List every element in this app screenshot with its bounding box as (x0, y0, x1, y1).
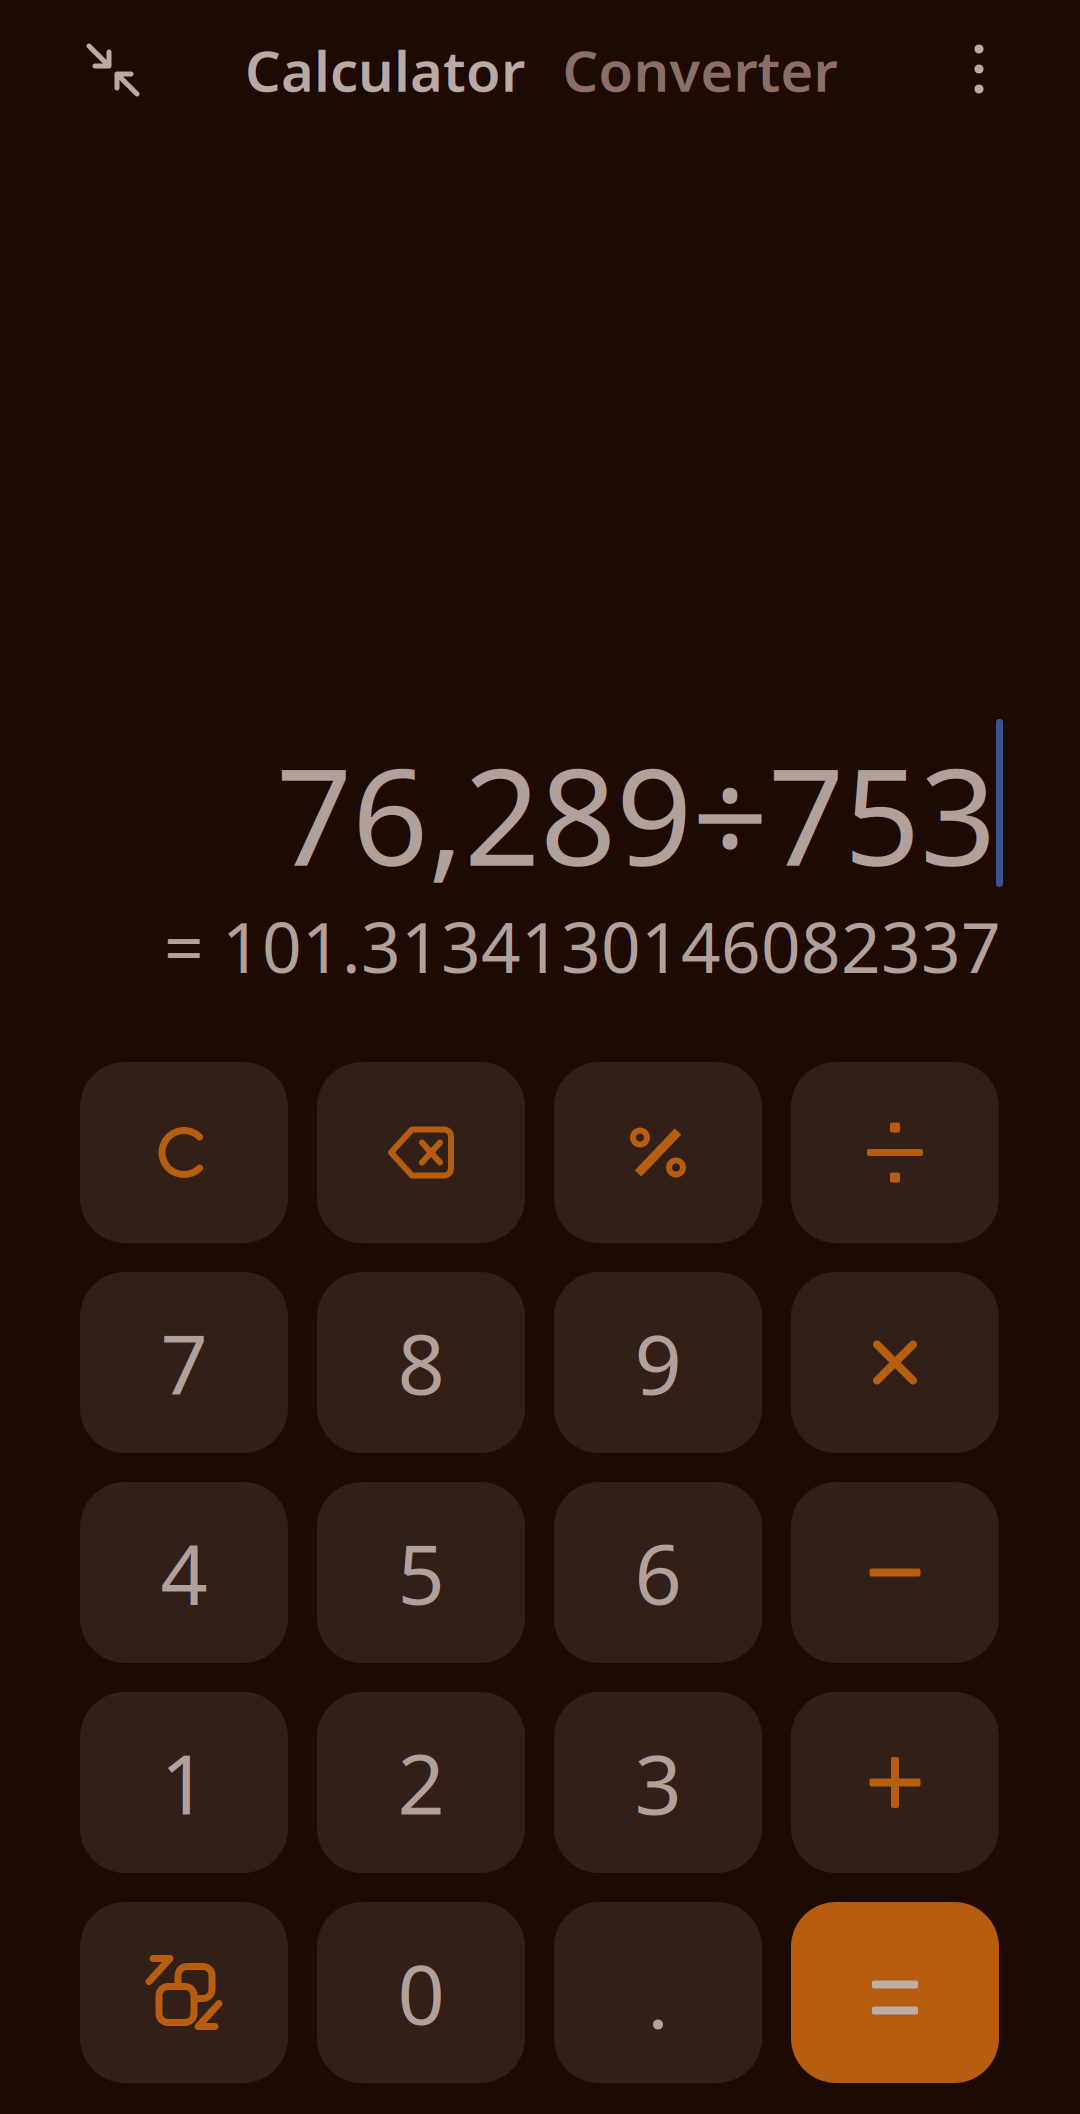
staticText: 4 (160, 1518, 207, 1627)
button[interactable]: 0 (317, 1902, 525, 2083)
button[interactable]: Subtract (791, 1482, 999, 1663)
button[interactable]: 6 (554, 1482, 762, 1663)
button[interactable]: Clear (80, 1062, 288, 1243)
staticText: Converter (562, 33, 837, 107)
staticText: Calculator (245, 33, 525, 107)
button[interactable]: 5 (317, 1482, 525, 1663)
staticText: = 101.3134130146082337 (164, 900, 1001, 992)
staticText: 76,289÷753 (276, 725, 996, 903)
button[interactable]: Divide (791, 1062, 999, 1243)
button[interactable]: Equals (791, 1902, 999, 2083)
button[interactable]: Multiply (791, 1272, 999, 1453)
button[interactable]: Calculator (235, 19, 535, 121)
staticText: 0 (397, 1938, 444, 2047)
button[interactable]: 8 (317, 1272, 525, 1453)
button[interactable]: Decimal point (554, 1902, 762, 2083)
staticText: 5 (397, 1518, 444, 1627)
button[interactable]: 9 (554, 1272, 762, 1453)
staticText: 2 (397, 1728, 444, 1837)
button[interactable]: Backspace (317, 1062, 525, 1243)
button[interactable]: 1 (80, 1692, 288, 1873)
staticText: 1 (160, 1728, 207, 1837)
button[interactable]: Unit converter (80, 1902, 288, 2083)
button[interactable]: 2 (317, 1692, 525, 1873)
button[interactable]: 7 (80, 1272, 288, 1453)
staticText: 8 (397, 1308, 444, 1417)
staticText: 7 (160, 1308, 207, 1417)
button[interactable]: 4 (80, 1482, 288, 1663)
staticText: 6 (634, 1518, 681, 1627)
staticText: 9 (634, 1308, 681, 1417)
button[interactable]: Converter (552, 19, 847, 121)
button[interactable]: Add (791, 1692, 999, 1873)
button[interactable]: 3 (554, 1692, 762, 1873)
button[interactable]: Percent (554, 1062, 762, 1243)
staticText: 3 (634, 1728, 681, 1837)
button[interactable]: Collapse (85, 42, 141, 98)
button[interactable]: More options (974, 45, 983, 92)
